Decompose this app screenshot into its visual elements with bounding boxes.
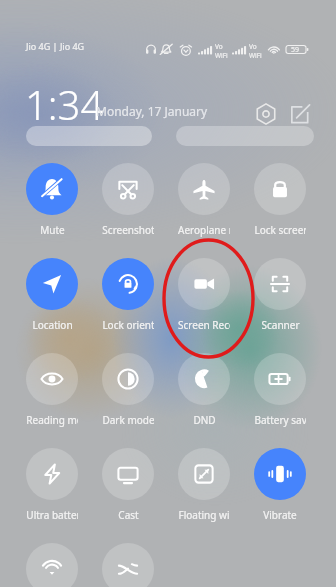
staticText: Vo [249, 42, 257, 51]
staticText: WiFi [215, 51, 228, 60]
staticText: Monday, 17 January [96, 103, 208, 119]
staticText: Reading mode [26, 413, 78, 427]
staticText: Dark mode [102, 413, 154, 427]
button[interactable]: Scanner [254, 258, 306, 332]
staticText: Screenshot [102, 223, 154, 237]
button[interactable]: Screenshot [102, 163, 154, 237]
button[interactable]: Aeroplane mode [178, 163, 230, 237]
button[interactable]: Reading mode [26, 353, 78, 427]
button[interactable]: Settings [254, 102, 278, 126]
button[interactable]: Floating window [178, 448, 230, 522]
staticText: Battery saver [254, 413, 306, 427]
button[interactable]: Lock screen [254, 163, 306, 237]
button[interactable]: Dark mode [102, 353, 154, 427]
button[interactable]: Battery saver [254, 353, 306, 427]
button[interactable]: Vibrate [254, 448, 306, 522]
button[interactable]: Mute [26, 163, 78, 237]
staticText: WiFi [249, 51, 262, 60]
button[interactable]: Location [26, 258, 78, 332]
staticText: Jio 4G | Jio 4G [26, 40, 85, 52]
staticText: Vo [215, 42, 223, 51]
staticText: Lock orientation [102, 318, 154, 332]
staticText: Aeroplane mode [178, 223, 230, 237]
staticText: DND [193, 413, 216, 427]
button[interactable]: Cast [102, 448, 154, 522]
staticText: Location [32, 318, 73, 332]
button[interactable] [102, 543, 154, 587]
button[interactable]: Screen Recorder [178, 258, 230, 332]
staticText: Scanner [261, 318, 300, 332]
staticText: Lock screen [254, 223, 306, 237]
staticText: Mute [40, 223, 65, 237]
staticText: Floating window [178, 508, 230, 522]
button[interactable]: Lock orientation [102, 258, 154, 332]
button[interactable]: DND [178, 353, 230, 427]
button[interactable]: Edit [288, 102, 312, 126]
button[interactable]: Ultra battery saver [26, 448, 78, 522]
staticText: Screen Recorder [178, 318, 230, 332]
button[interactable]: Volume [176, 126, 314, 146]
staticText: 59 [291, 45, 300, 55]
staticText: Cast [118, 508, 139, 522]
button[interactable]: Brightness [26, 126, 152, 146]
button[interactable] [26, 543, 78, 587]
staticText: 1:34 [25, 77, 104, 131]
staticText: Vibrate [263, 508, 297, 522]
staticText: Ultra battery saver [26, 508, 78, 522]
